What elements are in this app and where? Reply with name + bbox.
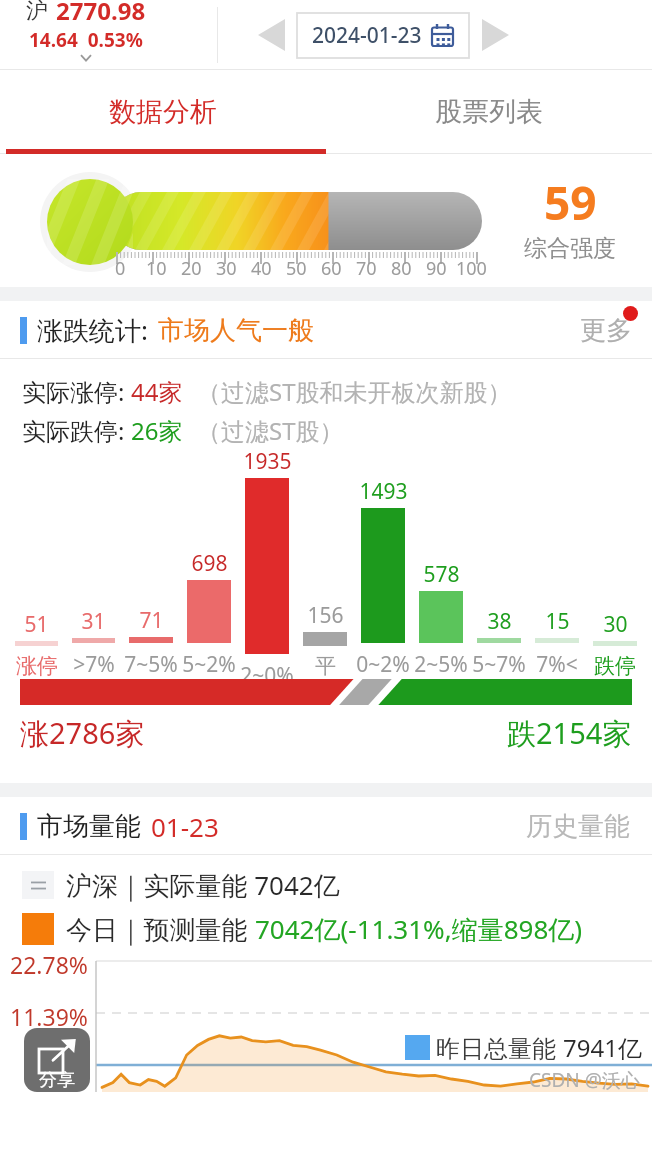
staticText: 平 — [315, 653, 336, 679]
staticText: 60 — [321, 256, 342, 281]
staticText: 更多 — [580, 314, 632, 347]
staticText: 数据分析 — [109, 95, 217, 129]
staticText: 26家 — [131, 414, 183, 447]
staticText: 2~5% — [414, 650, 468, 679]
staticText: 7941亿 — [563, 1031, 642, 1064]
staticText: 15 — [545, 607, 570, 636]
staticText: 沪 — [26, 0, 48, 25]
staticText: 昨日总量能 — [436, 1031, 563, 1064]
staticText: 0 — [115, 256, 126, 281]
button[interactable]: 38 — [470, 607, 528, 679]
staticText: 14.64 0.53% — [29, 27, 143, 53]
button[interactable]: 71 — [122, 606, 180, 679]
staticText: 今日｜预测量能 — [66, 911, 255, 947]
staticText: 44家 — [131, 375, 183, 408]
staticText: 0~2% — [356, 650, 410, 679]
staticText: 38 — [487, 607, 512, 636]
staticText: 698 — [191, 549, 228, 578]
button[interactable]: Previous day — [247, 11, 295, 59]
button[interactable]: 历史量能 — [522, 806, 634, 847]
button[interactable]: Share — [24, 1028, 90, 1092]
staticText: 80 — [391, 256, 412, 281]
button[interactable]: 2024-01-23 — [297, 13, 469, 58]
staticText: 综合强度 — [524, 234, 616, 263]
staticText: 51 — [24, 610, 49, 639]
staticText: 10 — [146, 256, 167, 281]
staticText: 20 — [181, 256, 202, 281]
staticText: 实际涨停: — [22, 375, 131, 408]
staticText: 2770.98 — [56, 0, 146, 27]
staticText: 跌2154家 — [507, 713, 632, 753]
staticText: 30 — [603, 610, 628, 639]
staticText: 7042亿(-11.31%,缩量898亿) — [255, 911, 583, 947]
button[interactable]: 1493 — [354, 477, 412, 679]
button[interactable]: 1935 — [238, 447, 296, 679]
staticText: >7% — [73, 650, 115, 679]
staticText: 90 — [426, 256, 447, 281]
staticText: 涨跌统计: — [37, 312, 148, 348]
staticText: 2024-01-23 — [312, 21, 422, 50]
button[interactable]: 698 — [180, 549, 238, 679]
staticText: 2~0% — [240, 661, 294, 679]
staticText: 22.78% — [10, 949, 88, 980]
staticText: 40 — [251, 256, 272, 281]
staticText: 5~2% — [182, 650, 236, 679]
button[interactable]: 156 — [296, 601, 354, 679]
staticText: 涨停 — [16, 653, 58, 679]
staticText: 01-23 — [151, 809, 219, 844]
staticText: （过滤ST股） — [197, 414, 344, 447]
staticText: 市场量能 — [37, 810, 141, 843]
staticText: 实际跌停: — [22, 414, 131, 447]
staticText: 100 — [456, 256, 487, 281]
staticText: 70 — [356, 256, 377, 281]
staticText: 沪深｜实际量能 7042亿 — [66, 867, 340, 903]
staticText: 市场人气一般 — [158, 314, 314, 347]
staticText: 31 — [81, 607, 106, 636]
button[interactable]: 51 — [8, 610, 65, 679]
staticText: 71 — [139, 606, 164, 635]
staticText: 30 — [216, 256, 237, 281]
staticText: CSDN @沃心 — [529, 1067, 640, 1093]
staticText: 跌停 — [594, 653, 636, 679]
button[interactable]: Next day — [471, 11, 519, 59]
staticText: 50 — [286, 256, 307, 281]
staticText: 5~7% — [472, 650, 526, 679]
button[interactable]: 30 — [586, 610, 644, 679]
button[interactable]: 578 — [412, 560, 470, 679]
button[interactable]: 股票列表 — [326, 70, 652, 154]
staticText: 156 — [307, 601, 344, 630]
button[interactable]: 31 — [65, 607, 122, 679]
staticText: 7%< — [536, 650, 578, 679]
staticText: 1935 — [243, 447, 292, 476]
staticText: 11.39% — [10, 1001, 88, 1032]
staticText: 59 — [544, 171, 597, 234]
staticText: 578 — [423, 560, 460, 589]
staticText: 分享 — [39, 1069, 75, 1092]
button[interactable]: 15 — [528, 607, 586, 679]
staticText: 1493 — [359, 477, 408, 506]
staticText: 0 — [78, 1053, 92, 1084]
staticText: 7~5% — [124, 650, 178, 679]
staticText: 涨2786家 — [20, 713, 145, 753]
button[interactable]: 数据分析 — [0, 70, 326, 154]
staticText: 历史量能 — [526, 810, 630, 843]
staticText: （过滤ST股和未开板次新股） — [197, 375, 512, 408]
button[interactable]: 更多 — [574, 308, 638, 353]
staticText: 股票列表 — [435, 95, 543, 129]
